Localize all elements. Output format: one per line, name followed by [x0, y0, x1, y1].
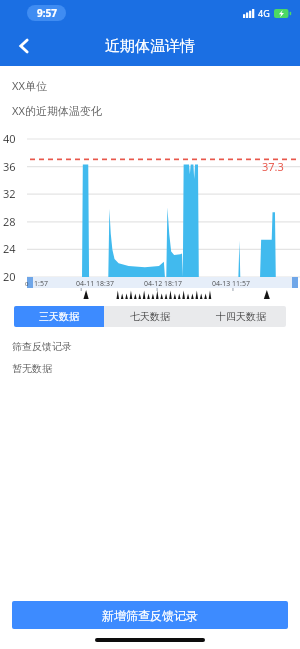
staticText: XX的近期体温变化 [12, 103, 102, 118]
staticText: 9:57 [37, 6, 57, 20]
staticText: 04-11 18:37 [76, 279, 114, 289]
button[interactable]: 十四天数据 [195, 306, 286, 327]
staticText: 十四天数据 [216, 310, 266, 323]
staticText: 暂无数据 [12, 362, 52, 375]
staticText: 28 [3, 214, 16, 229]
button[interactable]: 新增筛查反馈记录 [12, 601, 288, 629]
staticText: XX单位 [12, 78, 47, 93]
staticText: 筛查反馈记录 [12, 340, 72, 353]
staticText: 20 [3, 269, 16, 284]
staticText: 三天数据 [39, 310, 79, 323]
staticText: 32 [3, 186, 16, 201]
staticText: 24 [3, 241, 16, 256]
staticText: 36 [3, 159, 16, 174]
staticText: 近期体温详情 [105, 37, 195, 56]
staticText: 37.3 [262, 159, 284, 174]
staticText: 新增筛查反馈记录 [102, 608, 198, 623]
staticText: 04-13 11:57 [212, 279, 250, 289]
button[interactable]: 三天数据 [14, 306, 104, 327]
staticText: 4G [258, 7, 270, 19]
button[interactable]: Back [7, 29, 41, 63]
staticText: 04-12 18:17 [144, 279, 182, 289]
staticText: 0 [25, 280, 29, 288]
staticText: 40 [3, 131, 16, 146]
staticText: 1:57 [34, 279, 48, 289]
staticText: 七天数据 [130, 310, 170, 323]
button[interactable]: 七天数据 [104, 306, 195, 327]
